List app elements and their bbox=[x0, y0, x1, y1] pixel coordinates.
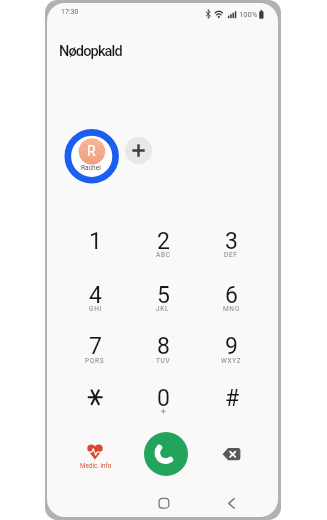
button[interactable] bbox=[135, 324, 191, 371]
staticText: TUV bbox=[156, 357, 171, 365]
button[interactable] bbox=[144, 432, 188, 476]
staticText: 8 bbox=[157, 333, 170, 360]
button[interactable] bbox=[67, 273, 123, 320]
button[interactable] bbox=[203, 219, 259, 266]
button[interactable] bbox=[67, 376, 123, 423]
staticText: 3 bbox=[225, 228, 238, 255]
button[interactable] bbox=[65, 130, 119, 184]
staticText: 9 bbox=[225, 333, 238, 360]
button[interactable] bbox=[135, 273, 191, 320]
button[interactable] bbox=[125, 137, 152, 164]
staticText: 17:30 bbox=[61, 8, 79, 16]
staticText: MNO bbox=[223, 305, 240, 313]
staticText: 7 bbox=[89, 333, 102, 360]
button[interactable] bbox=[203, 273, 259, 320]
button[interactable] bbox=[203, 324, 259, 371]
staticText: 1 bbox=[89, 228, 102, 255]
staticText: 0 bbox=[157, 385, 170, 412]
button[interactable] bbox=[67, 219, 123, 266]
button[interactable] bbox=[135, 376, 191, 423]
button[interactable] bbox=[152, 492, 176, 515]
button[interactable] bbox=[67, 324, 123, 371]
staticText: PQRS bbox=[85, 357, 105, 365]
button[interactable] bbox=[204, 376, 260, 423]
staticText: R bbox=[87, 143, 96, 159]
staticText: 6 bbox=[225, 282, 238, 309]
button[interactable] bbox=[216, 441, 247, 468]
staticText: Medic. info bbox=[80, 462, 112, 469]
staticText: ABC bbox=[156, 251, 171, 259]
button[interactable] bbox=[73, 440, 118, 472]
staticText: DEF bbox=[224, 251, 238, 259]
staticText: 4 bbox=[89, 282, 102, 309]
staticText: 100% bbox=[239, 10, 258, 19]
staticText: WXYZ bbox=[221, 357, 242, 365]
staticText: 2 bbox=[157, 228, 170, 255]
staticText: # bbox=[225, 385, 240, 412]
staticText: Rachel bbox=[81, 164, 101, 172]
staticText: 5 bbox=[157, 282, 170, 309]
button[interactable] bbox=[220, 492, 244, 515]
button[interactable] bbox=[135, 219, 191, 266]
staticText: Nødopkald bbox=[59, 43, 122, 60]
staticText: GHI bbox=[89, 305, 102, 313]
staticText: JKL bbox=[156, 305, 170, 313]
